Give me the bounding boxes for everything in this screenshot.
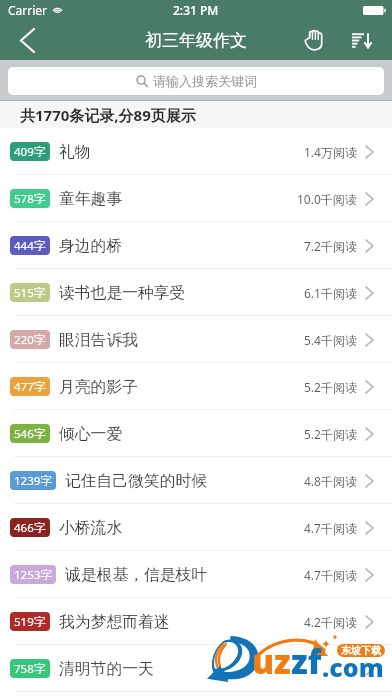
staticText: 月亮的影子 — [59, 377, 138, 397]
staticText: 7.2千阅读 — [304, 238, 357, 254]
staticText: 倾心一爱 — [59, 424, 123, 444]
staticText: 1253字 — [14, 567, 52, 583]
staticText: 4.8千阅读 — [304, 473, 357, 489]
staticText: 444字 — [14, 238, 46, 254]
staticText: 初三年级作文 — [145, 30, 247, 51]
button[interactable]: 220字 — [0, 316, 392, 363]
staticText: 共1770条记录,分89页展示 — [20, 105, 196, 125]
button[interactable]: 546字 — [0, 410, 392, 457]
staticText: 读书也是一种享受 — [59, 283, 186, 303]
button[interactable]: 758字 — [0, 645, 392, 692]
staticText: 477字 — [14, 379, 46, 395]
staticText: 清明节的一天 — [59, 659, 154, 679]
button[interactable]: 515字 — [0, 269, 392, 316]
staticText: 220字 — [14, 332, 46, 348]
staticText: uz — [252, 639, 291, 684]
staticText: 诚是根基，信是枝叶 — [65, 565, 208, 585]
staticText: 请输入搜索关键词 — [153, 73, 257, 89]
staticText: 578字 — [14, 191, 46, 207]
button[interactable]: 519字 — [0, 598, 392, 645]
button[interactable]: 1239字 — [0, 457, 392, 504]
button[interactable]: 477字 — [0, 363, 392, 410]
staticText: 10.0千阅读 — [297, 191, 357, 207]
button[interactable]: 444字 — [0, 222, 392, 269]
staticText: 身边的桥 — [59, 236, 123, 256]
staticText: 5.4千阅读 — [304, 332, 357, 348]
staticText: zf — [291, 639, 322, 684]
staticText: 466字 — [14, 520, 46, 536]
staticText: .com — [322, 650, 384, 684]
staticText: 记住自己微笑的时候 — [65, 471, 208, 491]
staticText: 519字 — [14, 614, 46, 630]
staticText: 东坡下载 — [341, 644, 381, 657]
staticText: 小桥流水 — [59, 518, 123, 538]
staticText: 1.4万阅读 — [304, 144, 357, 160]
button[interactable]: 578字 — [0, 175, 392, 222]
staticText: 409字 — [14, 144, 46, 160]
staticText: 546字 — [14, 426, 46, 442]
staticText: 6.1千阅读 — [304, 285, 357, 301]
button[interactable]: 请输入搜索关键词 — [8, 67, 384, 95]
staticText: 5.2千阅读 — [304, 379, 357, 395]
button[interactable]: Hand — [291, 20, 335, 60]
staticText: 4.7千阅读 — [304, 567, 357, 583]
button[interactable]: 1253字 — [0, 551, 392, 598]
button[interactable]: Back — [0, 20, 54, 60]
button[interactable]: 409字 — [0, 128, 392, 175]
staticText: 515字 — [14, 285, 46, 301]
staticText: 4.7千阅读 — [304, 520, 357, 536]
staticText: 我为梦想而着迷 — [59, 612, 170, 632]
staticText: 1239字 — [14, 473, 52, 489]
staticText: 眼泪告诉我 — [59, 330, 138, 350]
staticText: 4.2千阅读 — [304, 614, 357, 630]
staticText: 童年趣事 — [59, 189, 123, 209]
button[interactable]: Sort — [342, 20, 382, 60]
button[interactable]: 466字 — [0, 504, 392, 551]
staticText: 2:31 PM — [173, 2, 219, 18]
staticText: 礼物 — [59, 142, 91, 162]
staticText: 5.2千阅读 — [304, 426, 357, 442]
staticText: Carrier — [8, 2, 48, 18]
staticText: 758字 — [14, 661, 46, 677]
